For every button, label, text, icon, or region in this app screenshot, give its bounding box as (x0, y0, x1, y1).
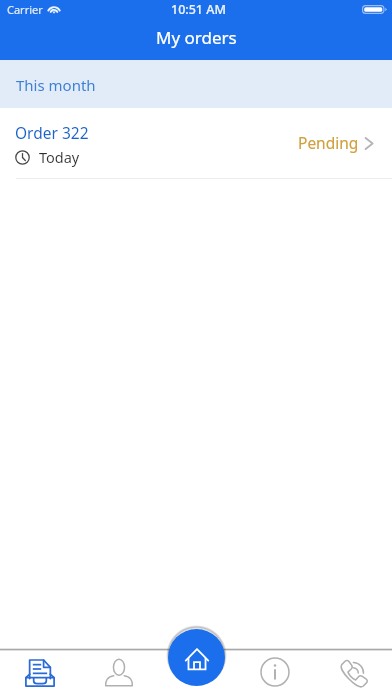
button[interactable]: Home (168, 629, 225, 686)
button[interactable]: Profile (79, 648, 158, 696)
button[interactable]: Info (236, 648, 314, 696)
button[interactable]: Order 322 (0, 108, 392, 179)
staticText: Order 322 (15, 122, 89, 143)
button[interactable]: Call (314, 648, 392, 696)
staticText: My orders (156, 26, 237, 49)
staticText: 10:51 AM (171, 1, 226, 18)
staticText: Carrier (7, 2, 43, 17)
staticText: This month (16, 75, 96, 95)
staticText: Today (39, 147, 80, 167)
staticText: Pending (298, 132, 359, 153)
button[interactable]: Orders (0, 648, 79, 696)
